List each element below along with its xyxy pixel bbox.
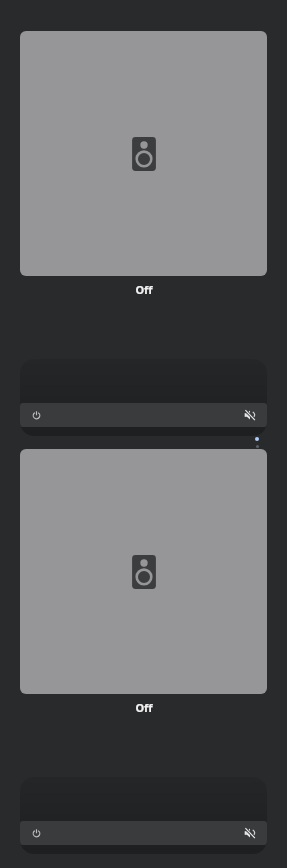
button[interactable]: Mute [240, 405, 260, 425]
staticText: Off [135, 282, 153, 297]
staticText: Off [135, 700, 153, 715]
button[interactable]: Power [27, 824, 45, 842]
button[interactable]: Power [27, 406, 45, 424]
button[interactable]: Power [20, 821, 267, 845]
button[interactable] [20, 449, 267, 694]
button[interactable]: Mute [240, 823, 260, 843]
button[interactable]: Power [20, 403, 267, 427]
button[interactable] [20, 31, 267, 276]
